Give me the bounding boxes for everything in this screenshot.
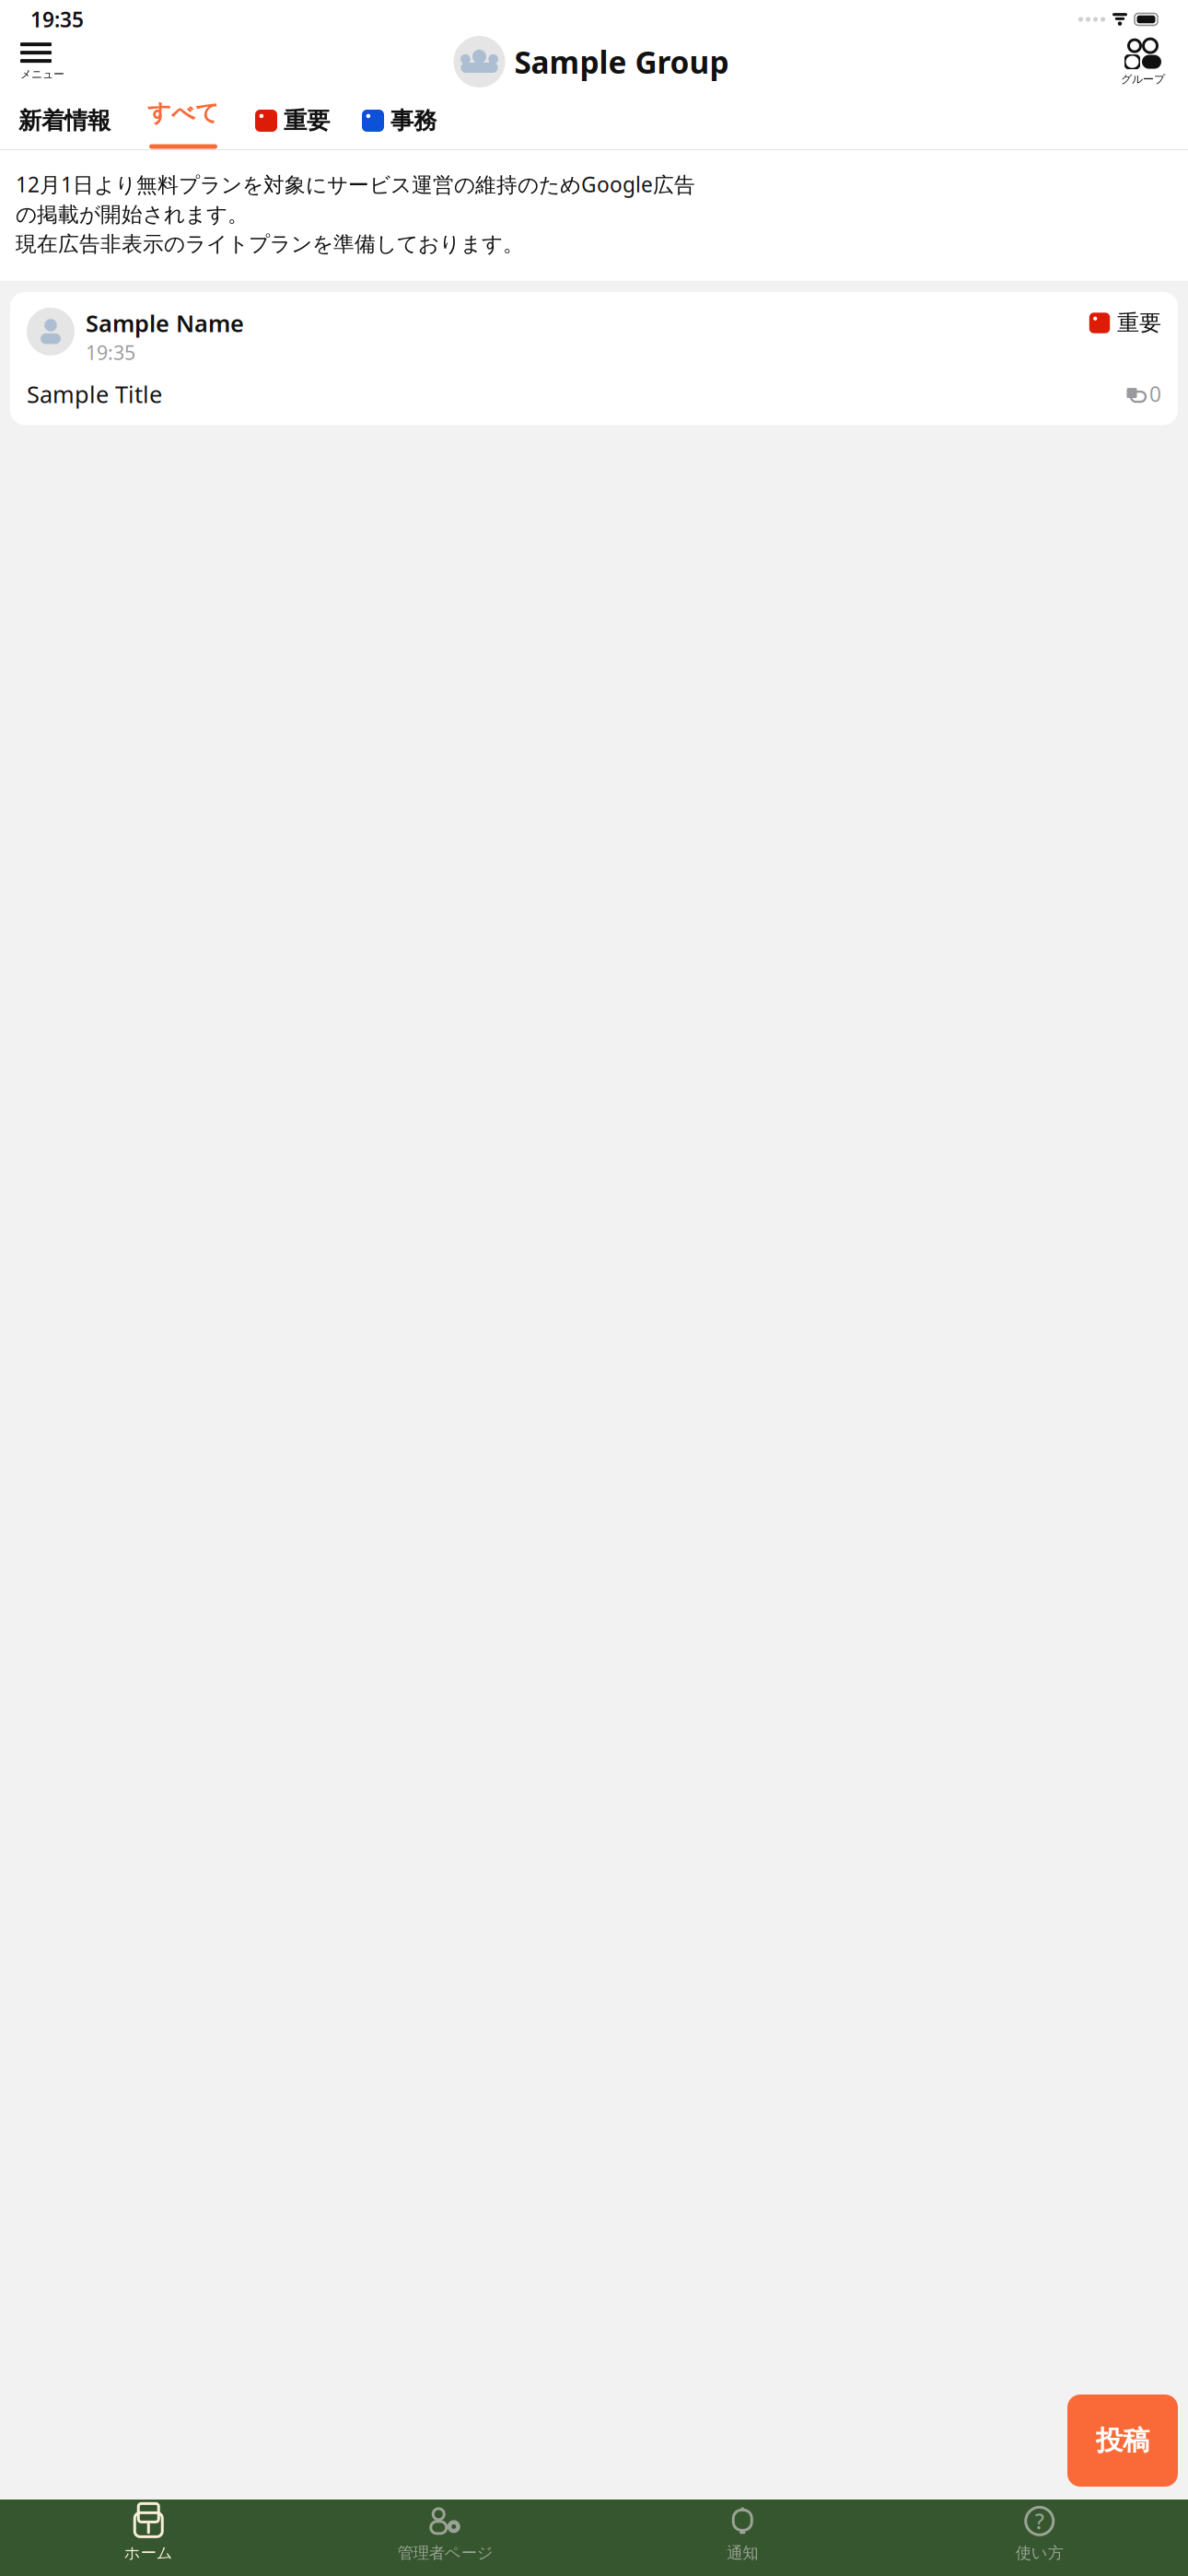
button[interactable]: 管理者ページ	[297, 2498, 594, 2570]
button[interactable]: グループ	[1111, 39, 1175, 85]
staticText: 管理者ページ	[398, 2543, 493, 2563]
staticText: 現在広告非表示のライトプランを準備しております。	[16, 231, 524, 257]
button[interactable]: ?	[891, 2498, 1188, 2570]
staticText: 重要	[284, 106, 330, 135]
staticText: Sample Group	[514, 41, 729, 82]
staticText: Sample Title	[27, 378, 162, 409]
button[interactable]: 重要	[247, 100, 335, 141]
button[interactable]: すべて	[140, 93, 227, 149]
staticText: 事務	[390, 106, 437, 135]
staticText: 19:35	[86, 339, 135, 365]
staticText: グループ	[1121, 72, 1165, 86]
button[interactable]: 通知	[594, 2498, 891, 2570]
staticText: の掲載が開始されます。	[16, 202, 249, 227]
button[interactable]: メニュー	[13, 41, 72, 83]
staticText: 重要	[1117, 309, 1161, 337]
staticText: 19:35	[30, 5, 84, 33]
button[interactable]: 新着情報	[9, 100, 120, 141]
staticText: 0	[1149, 380, 1161, 408]
staticText: 新着情報	[18, 106, 111, 135]
staticText: 12月1日より無料プランを対象にサービス運営の維持のためGoogle広告	[16, 170, 695, 198]
button[interactable]: ホーム	[0, 2498, 297, 2570]
staticText: 使い方	[1016, 2543, 1063, 2563]
button[interactable]: Sample Name	[10, 292, 1178, 425]
staticText: すべて	[147, 98, 219, 127]
button[interactable]: 事務	[354, 100, 442, 141]
staticText: 投稿	[1096, 2424, 1149, 2457]
staticText: Sample Name	[86, 308, 244, 338]
staticText: ホーム	[124, 2543, 173, 2563]
staticText: ?	[1035, 2507, 1044, 2535]
button[interactable]: 投稿	[1067, 2395, 1178, 2487]
staticText: 通知	[727, 2543, 758, 2563]
staticText: メニュー	[20, 67, 64, 81]
